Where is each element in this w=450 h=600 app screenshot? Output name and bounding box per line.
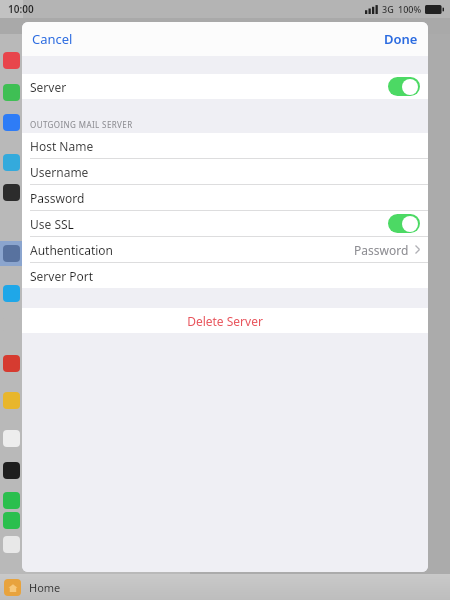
button[interactable]: Authentication — [22, 237, 428, 262]
staticText: Authentication — [30, 242, 114, 258]
button[interactable]: Cancel — [22, 22, 83, 56]
button[interactable]: Server Port — [22, 263, 428, 288]
staticText: Done — [384, 30, 418, 48]
button[interactable]: Use SSL — [22, 211, 428, 236]
button[interactable]: Delete Server — [22, 308, 428, 333]
button[interactable]: Server — [22, 74, 428, 99]
button[interactable]: Username — [22, 159, 428, 184]
staticText: 10:00 — [8, 2, 34, 16]
staticText: Delete Server — [187, 313, 263, 329]
button[interactable]: Toggle — [388, 77, 420, 96]
staticText: Username — [30, 164, 89, 180]
button[interactable]: Password — [22, 185, 428, 210]
button[interactable]: Home — [4, 579, 61, 596]
staticText: Cancel — [32, 30, 73, 48]
staticText: Home — [29, 580, 61, 595]
button[interactable]: Done — [374, 22, 428, 56]
staticText: OUTGOING MAIL SERVER — [30, 119, 133, 130]
staticText: Server — [30, 79, 67, 95]
button[interactable]: Toggle — [388, 214, 420, 233]
staticText: Password — [30, 190, 85, 206]
staticText: Host Name — [30, 138, 94, 154]
staticText: Use SSL — [30, 216, 74, 232]
staticText: 100% — [398, 3, 422, 15]
button[interactable]: Host Name — [22, 133, 428, 158]
staticText: Server Port — [30, 268, 94, 284]
staticText: 3G — [382, 3, 394, 15]
staticText: Password — [354, 242, 409, 258]
